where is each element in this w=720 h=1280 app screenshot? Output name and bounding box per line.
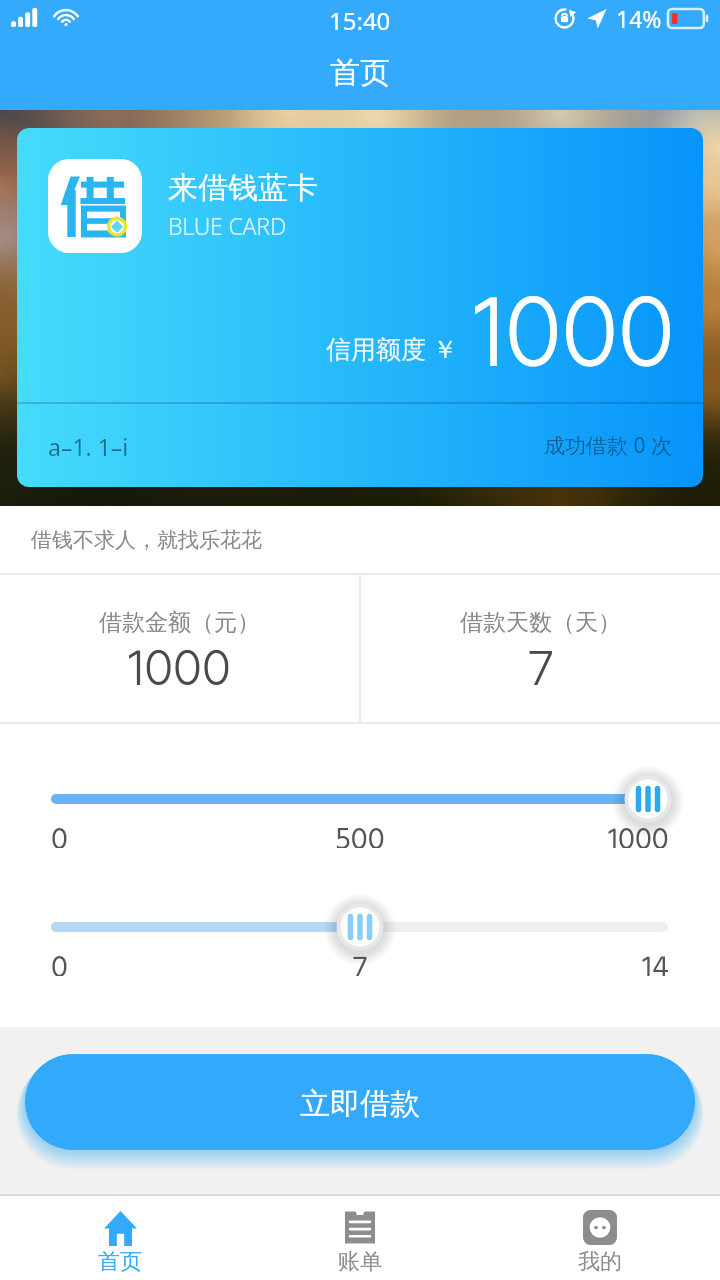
- staticText: 0: [51, 944, 68, 976]
- staticText: 7: [353, 944, 367, 976]
- button[interactable]: [0, 902, 720, 952]
- staticText: 1000: [608, 816, 669, 848]
- staticText: 14%: [616, 3, 662, 34]
- staticText: 借款金额（元）: [99, 608, 260, 637]
- button[interactable]: 借款天数（天）: [361, 575, 720, 722]
- button[interactable]: [0, 774, 720, 824]
- staticText: 借款天数（天）: [460, 608, 621, 637]
- staticText: 14: [642, 944, 669, 976]
- staticText: 首页: [330, 54, 390, 92]
- staticText: 信用额度 ￥: [326, 331, 458, 365]
- staticText: 我的: [578, 1248, 622, 1276]
- staticText: 账单: [338, 1248, 382, 1276]
- staticText: 7: [529, 629, 553, 714]
- staticText: 来借钱蓝卡: [168, 169, 318, 207]
- staticText: 15:40: [329, 4, 391, 37]
- other: Bills: [344, 1210, 376, 1245]
- staticText: 立即借款: [300, 1085, 420, 1123]
- button[interactable]: 借款金额（元）: [0, 575, 359, 722]
- staticText: 1000: [473, 256, 675, 423]
- button[interactable]: Bills: [240, 1196, 480, 1280]
- staticText: 首页: [98, 1248, 142, 1276]
- staticText: 借钱不求人，就找乐花花: [31, 527, 262, 553]
- staticText: BLUE CARD: [168, 210, 287, 241]
- button[interactable]: Home: [0, 1196, 240, 1280]
- other: Profile: [583, 1210, 617, 1245]
- button[interactable]: 立即借款: [25, 1054, 695, 1150]
- staticText: 500: [335, 816, 385, 848]
- staticText: 成功借款 0 次: [544, 431, 672, 460]
- staticText: 0: [51, 816, 68, 848]
- button[interactable]: 来借钱蓝卡: [17, 128, 703, 487]
- staticText: 1000: [128, 629, 231, 714]
- button[interactable]: Profile: [480, 1196, 720, 1280]
- other: Rotation lock: [554, 8, 575, 29]
- staticText: a–1. 1–i: [48, 431, 129, 462]
- other: Home: [104, 1210, 137, 1247]
